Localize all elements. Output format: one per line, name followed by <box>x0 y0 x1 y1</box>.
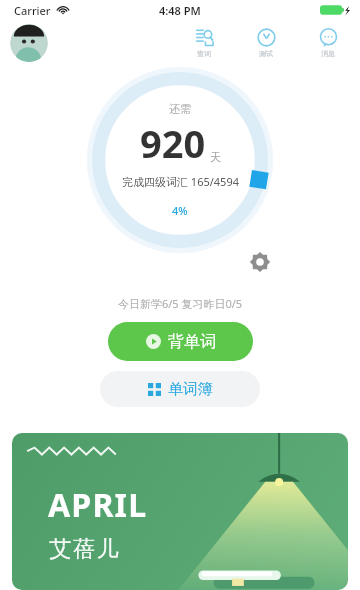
staticText: 背单词 <box>168 332 216 352</box>
button[interactable]: 测试 <box>246 28 286 58</box>
staticText: 还需 <box>169 102 191 116</box>
button[interactable]: 背单词 <box>108 322 253 361</box>
staticText: 完成四级词汇 165/4594 <box>122 174 239 189</box>
staticText: 4% <box>172 203 188 218</box>
button[interactable]: APRIL <box>12 433 348 590</box>
button[interactable]: 单词簿 <box>100 371 260 407</box>
button[interactable]: Profile <box>10 24 48 62</box>
staticText: 消息 <box>321 49 335 58</box>
staticText: 920 <box>140 117 206 169</box>
staticText: 今日新学6/5 复习昨日0/5 <box>0 296 360 311</box>
staticText: 单词簿 <box>168 380 213 399</box>
staticText: 测试 <box>259 49 273 58</box>
staticText: APRIL <box>48 483 148 527</box>
staticText: 查词 <box>197 49 211 58</box>
button[interactable]: Settings <box>248 250 272 274</box>
staticText: 艾蓓儿 <box>48 535 120 563</box>
staticText: Carrier <box>14 3 51 18</box>
button[interactable]: 消息 <box>308 28 348 58</box>
staticText: 4:48 PM <box>159 3 201 18</box>
staticText: 天 <box>210 150 221 164</box>
button[interactable]: 查词 <box>184 28 224 58</box>
